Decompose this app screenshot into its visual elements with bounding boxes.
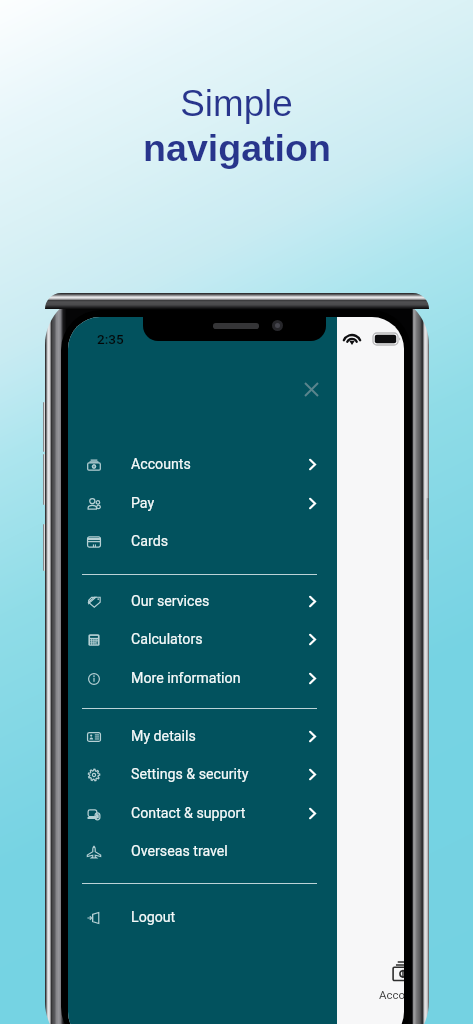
staticText: Contact & support bbox=[131, 805, 246, 822]
button[interactable]: My details bbox=[68, 717, 337, 756]
staticText: navigation bbox=[143, 127, 331, 169]
staticText: More information bbox=[131, 670, 241, 687]
button[interactable]: Contact & support bbox=[68, 794, 337, 833]
staticText: 2:35 bbox=[97, 331, 124, 347]
button[interactable]: Logout bbox=[68, 898, 337, 937]
staticText: Our services bbox=[131, 593, 210, 610]
staticText: Accounts bbox=[379, 988, 404, 1001]
button[interactable]: Pay bbox=[68, 484, 337, 523]
button[interactable]: Cards bbox=[68, 522, 337, 561]
staticText: Calculators bbox=[131, 631, 203, 648]
staticText: Pay bbox=[131, 495, 155, 512]
button[interactable]: Settings & security bbox=[68, 755, 337, 794]
button[interactable]: Overseas travel bbox=[68, 832, 337, 871]
button[interactable]: More information bbox=[68, 659, 337, 698]
staticText: Simple bbox=[180, 83, 293, 124]
button[interactable]: Calculators bbox=[68, 620, 337, 659]
staticText: Logout bbox=[131, 909, 176, 926]
staticText: Overseas travel bbox=[131, 843, 228, 860]
staticText: Cards bbox=[131, 533, 168, 550]
button[interactable]: Close menu bbox=[295, 373, 327, 405]
staticText: My details bbox=[131, 728, 196, 745]
button[interactable]: Our services bbox=[68, 582, 337, 621]
staticText: Settings & security bbox=[131, 766, 249, 783]
staticText: Accounts bbox=[131, 456, 191, 473]
button[interactable]: Accounts bbox=[68, 445, 337, 484]
